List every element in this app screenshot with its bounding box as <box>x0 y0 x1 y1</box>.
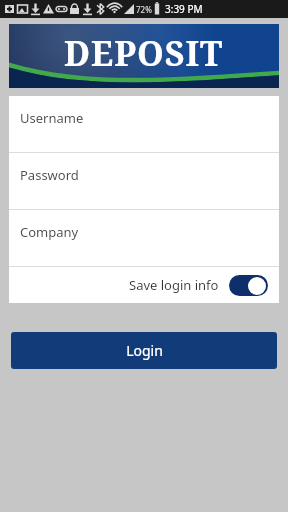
staticText: DEPOSIT <box>64 30 224 76</box>
staticText: 72% <box>136 4 152 15</box>
staticText: Login <box>126 341 163 360</box>
staticText: Company <box>20 223 79 241</box>
staticText: 3:39 PM <box>165 2 203 16</box>
button[interactable]: Password <box>9 153 279 209</box>
button[interactable]: Username <box>9 96 279 152</box>
staticText: Password <box>20 166 79 184</box>
staticText: Save login info <box>129 276 219 294</box>
button[interactable]: Login <box>11 332 277 369</box>
staticText: Username <box>20 109 84 127</box>
other: Save login info toggle <box>229 275 268 296</box>
button[interactable]: Save login info <box>9 267 279 303</box>
button[interactable]: Company <box>9 210 279 266</box>
